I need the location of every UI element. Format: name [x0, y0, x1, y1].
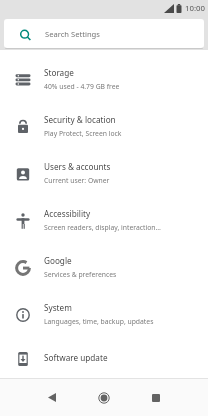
button[interactable]: Users & accounts	[0, 149, 208, 196]
staticText: Security & location	[44, 114, 116, 125]
button[interactable]: Google	[0, 243, 208, 290]
staticText: Accessibility	[44, 208, 91, 219]
button[interactable]: Software update	[0, 337, 208, 378]
button[interactable]: Search Settings	[4, 19, 204, 48]
staticText: 40% used - 4.79 GB free	[44, 82, 120, 91]
button[interactable]: Security & location	[0, 102, 208, 149]
button[interactable]	[30, 379, 74, 416]
staticText: Google	[44, 255, 72, 266]
staticText: Software update	[44, 352, 108, 363]
staticText: 10:00	[185, 3, 205, 14]
staticText: Screen readers, display, interaction…	[44, 223, 161, 232]
button[interactable]	[134, 379, 178, 416]
button[interactable]: Storage	[0, 55, 208, 102]
staticText: Users & accounts	[44, 161, 111, 172]
button[interactable]: System	[0, 290, 208, 337]
staticText: Services & preferences	[44, 270, 117, 279]
staticText: System	[44, 302, 72, 313]
button[interactable]: Accessibility	[0, 196, 208, 243]
staticText: Storage	[44, 67, 74, 78]
staticText: Play Protect, Screen lock	[44, 129, 122, 138]
staticText: Search Settings	[45, 29, 100, 39]
staticText: Languages, time, backup, updates	[44, 317, 154, 326]
staticText: Current user: Owner	[44, 176, 110, 185]
button[interactable]	[82, 379, 126, 416]
